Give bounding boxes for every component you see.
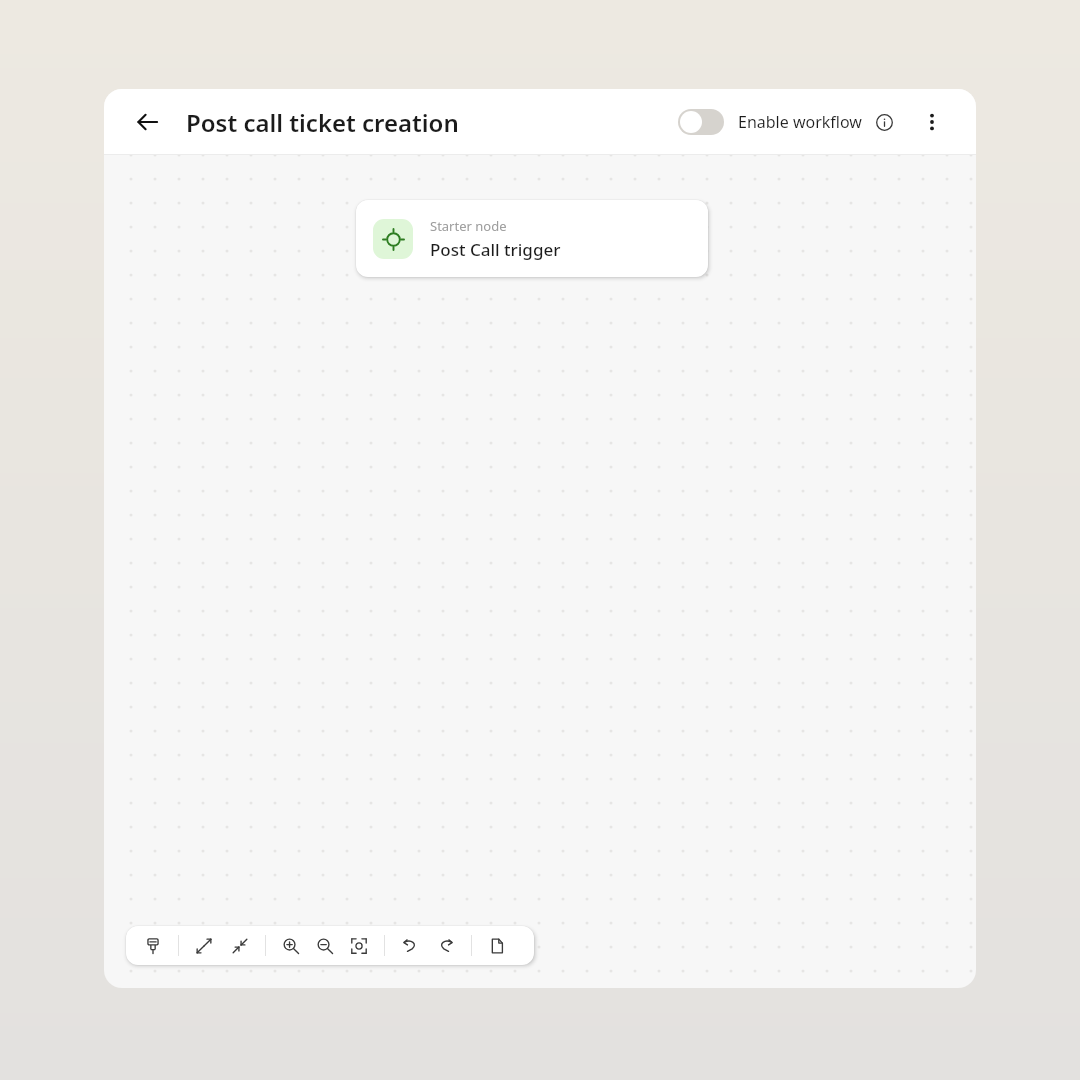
button[interactable]: Expand (189, 931, 219, 961)
button[interactable]: New page (482, 931, 512, 961)
staticText: Starter node (430, 217, 507, 235)
button[interactable]: Enable workflow toggle (678, 109, 724, 135)
button[interactable]: Starter node (356, 200, 708, 277)
button[interactable]: Pen tool (138, 931, 168, 961)
button[interactable]: More options (912, 102, 952, 142)
button[interactable]: Zoom out (310, 931, 340, 961)
button[interactable]: Back (128, 102, 168, 142)
button[interactable]: Info (870, 108, 898, 136)
button[interactable]: Fit to screen (344, 931, 374, 961)
staticText: Enable workflow (738, 111, 862, 133)
button[interactable]: Collapse (225, 931, 255, 961)
staticText: Post Call trigger (430, 238, 561, 261)
button[interactable]: Redo (431, 931, 461, 961)
button[interactable]: Undo (395, 931, 425, 961)
button[interactable]: Zoom in (276, 931, 306, 961)
staticText: Post call ticket creation (186, 106, 459, 139)
